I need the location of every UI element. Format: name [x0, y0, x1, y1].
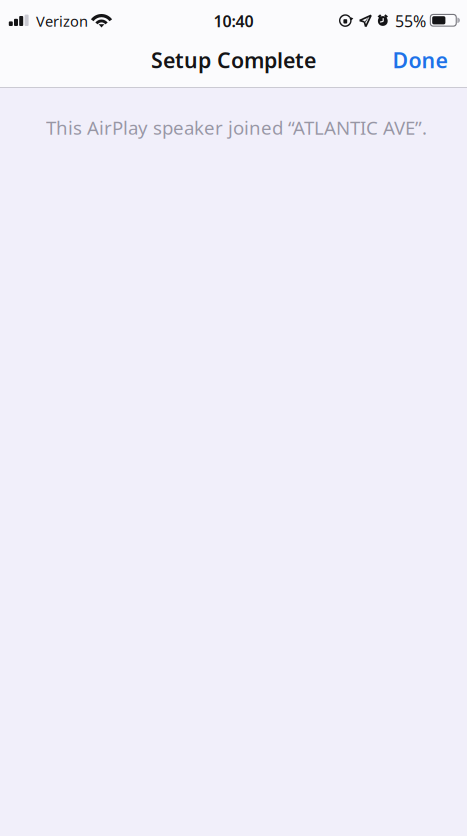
staticText: 55%	[395, 10, 426, 32]
staticText: 10:40	[213, 10, 253, 32]
staticText: Setup Complete	[151, 46, 316, 74]
staticText: Done	[392, 46, 447, 74]
button[interactable]: Done	[373, 42, 467, 87]
staticText: Verizon	[36, 11, 88, 31]
staticText: This AirPlay speaker joined “ATLANTIC AV…	[46, 115, 427, 140]
